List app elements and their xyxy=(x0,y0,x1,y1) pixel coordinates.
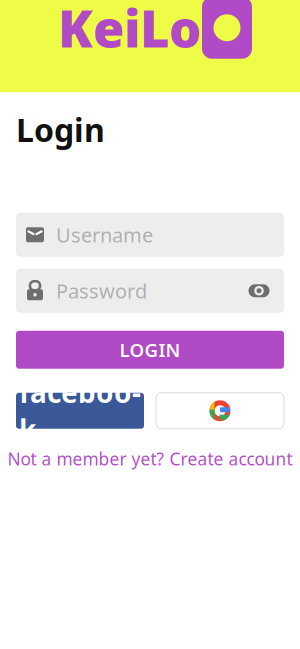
staticText: KeiLo xyxy=(58,0,201,61)
staticText: Login xyxy=(16,108,105,151)
staticText: facebook xyxy=(19,374,141,448)
staticText: Password xyxy=(56,277,147,304)
button[interactable]: facebook xyxy=(16,393,144,429)
staticText: Username xyxy=(56,221,153,248)
button[interactable]: Not a member yet? Create account xyxy=(0,447,300,471)
staticText: Not a member yet? Create account xyxy=(7,447,292,470)
staticText: LOGIN xyxy=(119,337,180,362)
button[interactable]: Show password xyxy=(244,276,274,306)
button[interactable]: Sign in with Google xyxy=(156,393,284,429)
button[interactable]: LOGIN xyxy=(16,331,284,369)
